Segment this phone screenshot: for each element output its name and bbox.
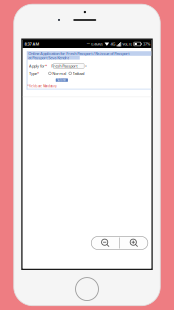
button[interactable]: Zoom in: [120, 236, 148, 249]
staticText: Tatkaal: [72, 71, 84, 76]
staticText: * fields are Mandatory: [27, 84, 56, 88]
staticText: 0.46K/s: [91, 41, 103, 47]
button[interactable]: Fresh Passport: [53, 64, 84, 68]
staticText: Submit: [57, 78, 66, 82]
staticText: VoLTE: [122, 41, 132, 47]
staticText: Normal: [52, 71, 66, 76]
staticText: *: [37, 71, 39, 76]
staticText: •••: [87, 42, 90, 46]
button[interactable]: Online Application for Fresh Passport / …: [27, 51, 151, 60]
staticText: 37%: [143, 41, 150, 47]
staticText: at Passport Seva Kendra: [28, 55, 69, 60]
button[interactable]: Normal: [48, 71, 66, 76]
staticText: Apply for: [29, 63, 45, 69]
staticText: *: [45, 63, 47, 69]
staticText: Online Application for Fresh Passport / …: [28, 51, 129, 56]
button[interactable]: Tatkaal: [69, 71, 84, 76]
staticText: 8:37 AM: [25, 41, 40, 47]
staticText: 4G: [110, 41, 115, 47]
staticText: ▾: [85, 64, 86, 67]
staticText: Fresh Passport: [51, 63, 77, 69]
staticText: Type: [29, 71, 37, 76]
button[interactable]: Submit: [56, 78, 68, 82]
button[interactable]: Zoom out: [91, 236, 119, 249]
